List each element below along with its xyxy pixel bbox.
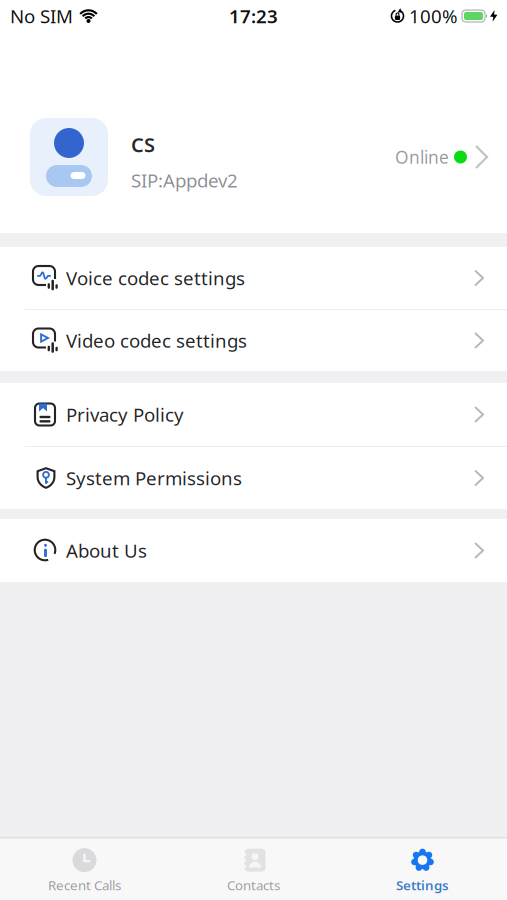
staticText: Settings bbox=[396, 876, 449, 894]
button[interactable]: Recent Calls bbox=[0, 847, 169, 894]
staticText: System Permissions bbox=[66, 466, 242, 490]
staticText: 17:23 bbox=[229, 4, 278, 28]
staticText: Video codec settings bbox=[66, 328, 247, 353]
staticText: 100% bbox=[409, 4, 458, 28]
button[interactable]: System Permissions bbox=[0, 447, 507, 509]
staticText: CS bbox=[131, 131, 155, 158]
staticText: No SIM bbox=[10, 4, 73, 28]
staticText: Voice codec settings bbox=[66, 266, 245, 290]
staticText: About Us bbox=[66, 538, 147, 563]
button[interactable]: CS bbox=[0, 118, 507, 196]
button[interactable]: Privacy Policy bbox=[0, 383, 507, 446]
staticText: Online bbox=[395, 145, 449, 168]
staticText: SIP:Appdev2 bbox=[131, 168, 238, 193]
button[interactable]: About Us bbox=[0, 519, 507, 582]
staticText: Privacy Policy bbox=[66, 402, 184, 427]
button[interactable]: Voice codec settings bbox=[0, 247, 507, 309]
button[interactable]: Video codec settings bbox=[0, 310, 507, 371]
staticText: Recent Calls bbox=[48, 876, 121, 894]
button[interactable]: Settings bbox=[338, 847, 507, 894]
staticText: Contacts bbox=[227, 876, 280, 894]
button[interactable]: Contacts bbox=[169, 847, 338, 894]
